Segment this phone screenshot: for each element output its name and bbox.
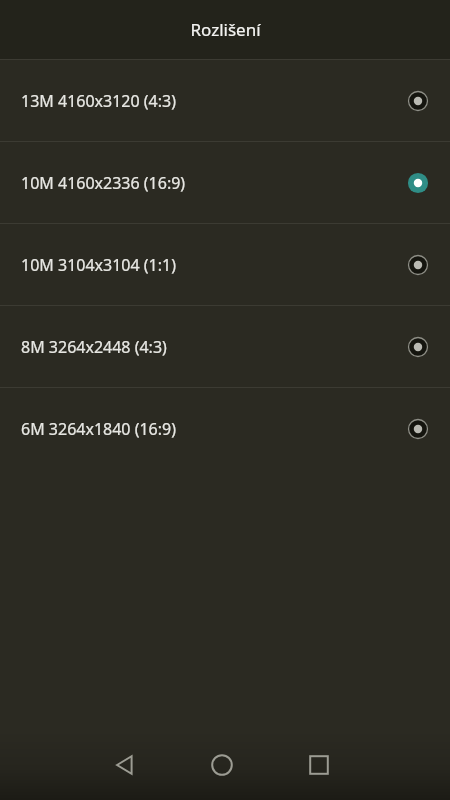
staticText: 10M 4160x2336 (16:9) xyxy=(21,172,186,194)
button[interactable]: 6M 3264x1840 (16:9) xyxy=(0,388,450,469)
staticText: 8M 3264x2448 (4:3) xyxy=(21,336,167,358)
button[interactable]: Recent apps xyxy=(295,741,343,789)
button[interactable]: Home xyxy=(198,741,246,789)
button[interactable]: 8M 3264x2448 (4:3) xyxy=(0,306,450,387)
staticText: 13M 4160x3120 (4:3) xyxy=(21,90,177,112)
button[interactable]: 10M 4160x2336 (16:9) xyxy=(0,142,450,223)
staticText: Rozlišení xyxy=(190,18,261,41)
button[interactable]: 13M 4160x3120 (4:3) xyxy=(0,60,450,141)
staticText: 10M 3104x3104 (1:1) xyxy=(21,254,177,276)
staticText: 6M 3264x1840 (16:9) xyxy=(21,418,177,440)
button[interactable]: Back xyxy=(101,741,149,789)
button[interactable]: 10M 3104x3104 (1:1) xyxy=(0,224,450,305)
